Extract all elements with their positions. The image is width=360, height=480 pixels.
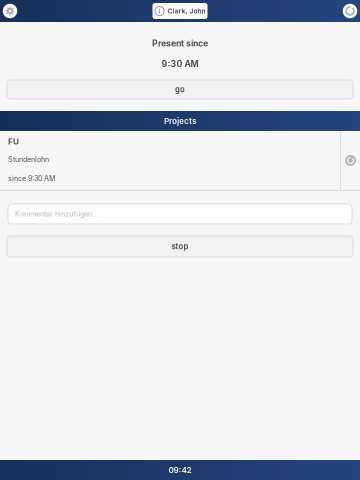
staticText: 9:30 AM [161, 58, 198, 69]
staticText: go [175, 85, 185, 94]
button[interactable]: Restart project timer [341, 131, 360, 190]
staticText: 09:42 [168, 465, 191, 475]
staticText: FU [8, 137, 19, 146]
button[interactable]: stop [7, 236, 353, 257]
staticText: Present since [152, 38, 208, 48]
staticText: Stundenlohn [8, 155, 49, 164]
staticText: Kommentar hinzufügen... [15, 210, 98, 218]
staticText: since 9:30 AM [8, 174, 55, 183]
button[interactable]: FU [0, 131, 340, 190]
button[interactable]: Kommentar hinzufügen... [8, 204, 352, 224]
button[interactable]: go [7, 80, 353, 99]
staticText: stop [171, 242, 188, 251]
button[interactable]: Clark, John [152, 3, 207, 19]
staticText: Projects [164, 116, 196, 126]
staticText: Clark, John [167, 7, 205, 15]
button[interactable]: Refresh [339, 0, 360, 22]
button[interactable]: Settings [0, 0, 21, 22]
